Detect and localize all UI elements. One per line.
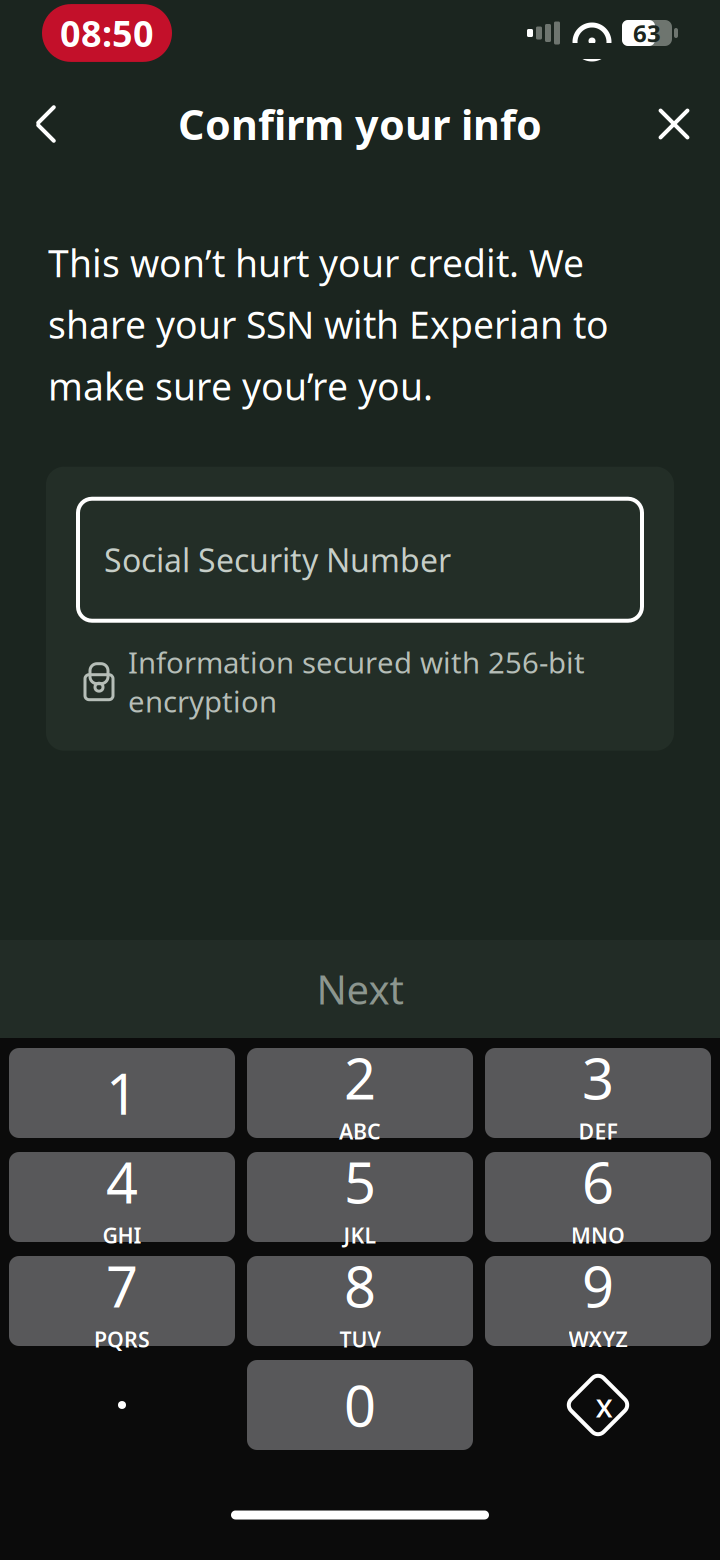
staticText: 8: [344, 1249, 376, 1323]
staticText: 2: [344, 1041, 376, 1115]
staticText: DEF: [578, 1117, 617, 1145]
staticText: 7: [106, 1249, 138, 1323]
staticText: 63: [633, 17, 661, 49]
staticText: JKL: [343, 1221, 376, 1249]
staticText: 08:50: [60, 9, 154, 57]
staticText: GHI: [102, 1221, 141, 1249]
button[interactable]: 3: [485, 1048, 711, 1138]
staticText: Next: [316, 962, 403, 1015]
staticText: 5: [344, 1145, 376, 1219]
button[interactable]: 9: [485, 1256, 711, 1346]
button[interactable]: 1: [9, 1048, 235, 1138]
button[interactable]: Next: [0, 940, 720, 1038]
button[interactable]: 0: [247, 1360, 473, 1450]
staticText: 9: [582, 1249, 614, 1323]
button[interactable]: Social Security Number: [78, 499, 642, 621]
staticText: PQRS: [94, 1325, 150, 1353]
staticText: 3: [582, 1041, 614, 1115]
staticText: Confirm your info: [178, 97, 542, 151]
staticText: This won’t hurt your credit. We share yo…: [48, 238, 609, 411]
staticText: x: [595, 1384, 612, 1426]
button[interactable]: Decimal point: [9, 1360, 235, 1450]
button[interactable]: 8: [247, 1256, 473, 1346]
staticText: MNO: [571, 1221, 625, 1249]
button[interactable]: Delete: [485, 1360, 711, 1450]
staticText: 1: [106, 1056, 138, 1130]
button[interactable]: 6: [485, 1152, 711, 1242]
button[interactable]: 5: [247, 1152, 473, 1242]
staticText: Social Security Number: [104, 538, 451, 581]
button[interactable]: 4: [9, 1152, 235, 1242]
button[interactable]: Back: [10, 88, 82, 160]
button[interactable]: Close: [638, 88, 710, 160]
staticText: TUV: [339, 1325, 380, 1353]
button[interactable]: 7: [9, 1256, 235, 1346]
staticText: Information secured with 256-bit encrypt…: [128, 643, 585, 721]
staticText: 4: [106, 1145, 138, 1219]
staticText: WXYZ: [568, 1325, 627, 1353]
staticText: 0: [344, 1368, 376, 1442]
staticText: 6: [582, 1145, 614, 1219]
button[interactable]: 2: [247, 1048, 473, 1138]
staticText: ABC: [339, 1117, 381, 1145]
